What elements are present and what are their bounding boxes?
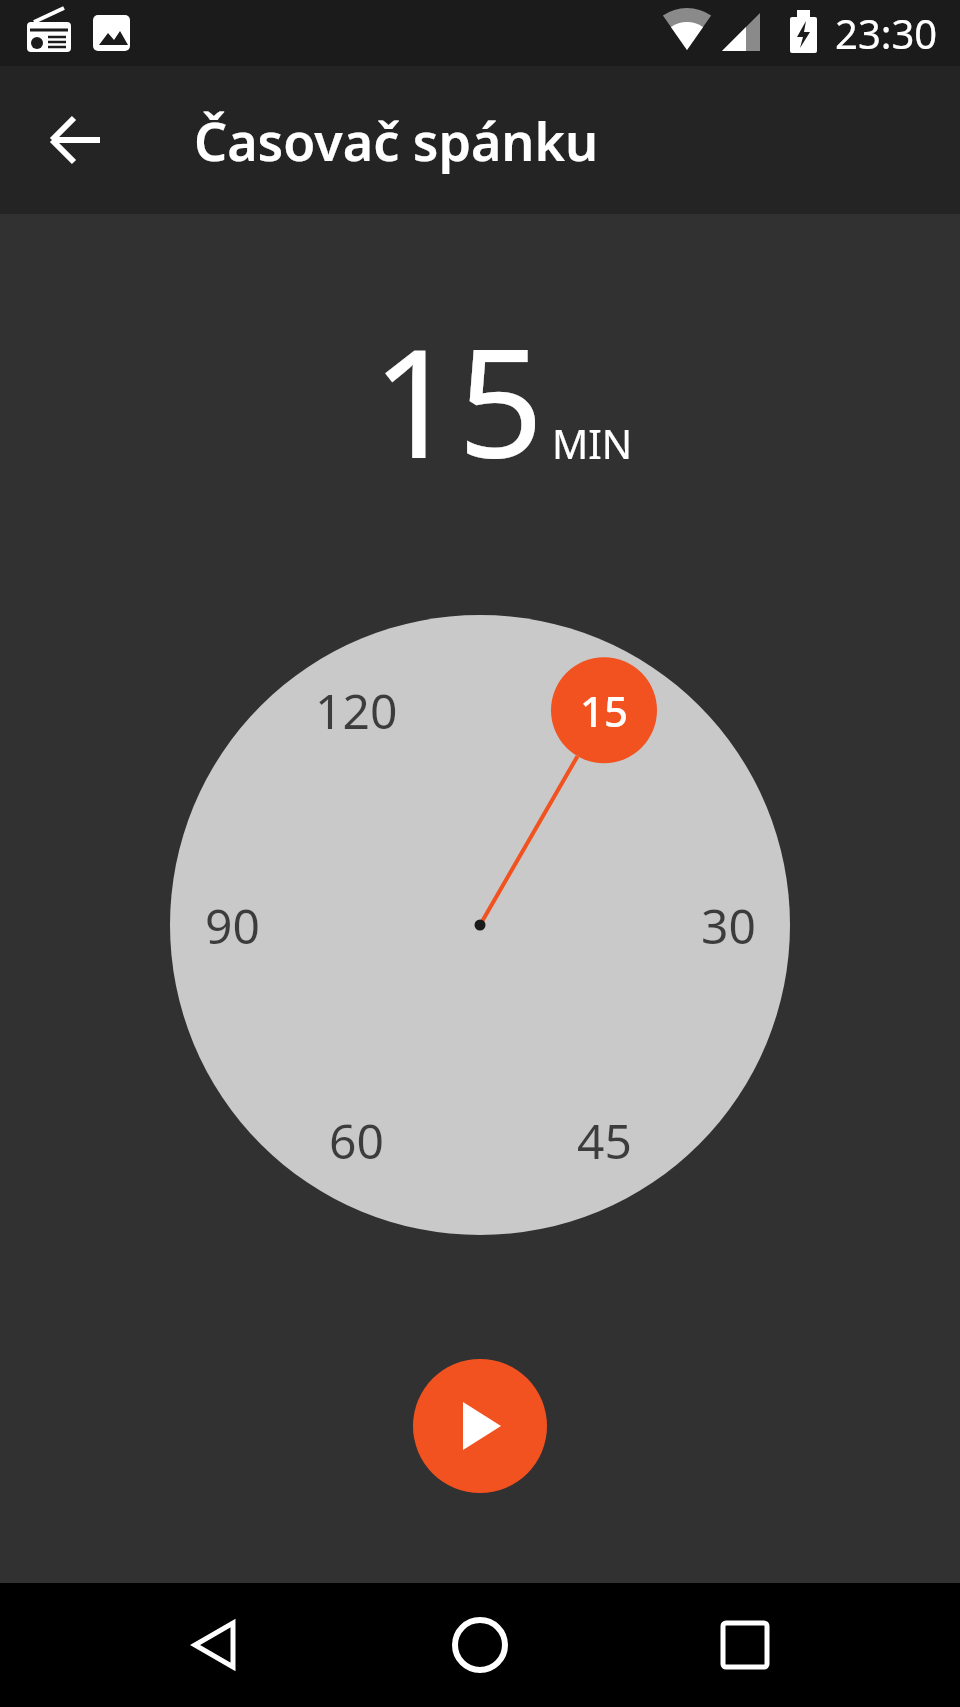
button[interactable] [44,108,108,172]
staticText: 23:30 [835,6,938,60]
staticText: MIN [552,416,633,470]
button[interactable] [413,1359,547,1493]
staticText: 90 [205,893,260,958]
staticText: 60 [329,1108,384,1173]
button[interactable] [690,1590,800,1700]
staticText: 45 [577,1108,632,1173]
staticText: 15 [372,298,544,502]
staticText: 15 [580,682,629,739]
button[interactable] [160,1590,270,1700]
staticText: 30 [701,893,756,958]
button[interactable] [425,1590,535,1700]
staticText: 120 [315,678,398,743]
staticText: Časovač spánku [194,105,599,176]
